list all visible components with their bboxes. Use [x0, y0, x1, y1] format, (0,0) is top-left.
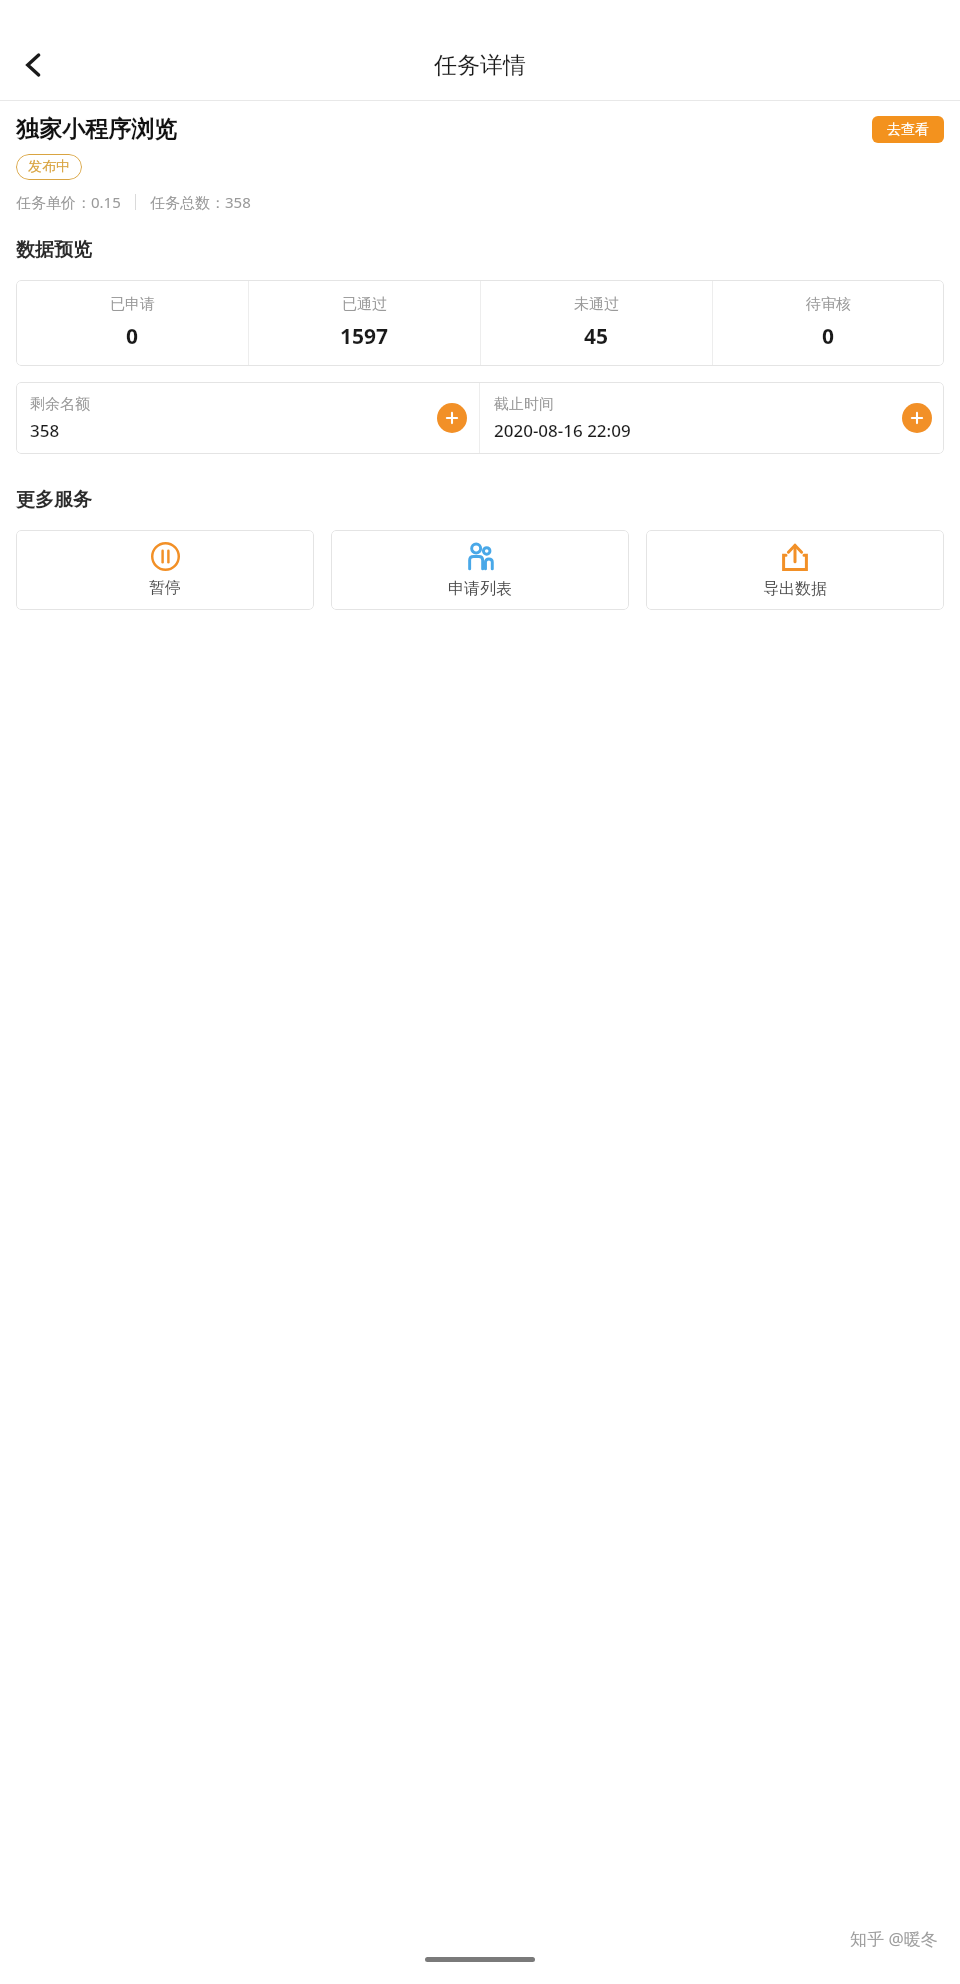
- staticText: 0: [822, 322, 835, 351]
- staticText: 去查看: [887, 121, 929, 139]
- button[interactable]: Back: [6, 37, 62, 93]
- button[interactable]: 未通过: [481, 280, 712, 366]
- button[interactable]: 已申请: [16, 280, 248, 366]
- button[interactable]: 导出数据: [646, 530, 944, 610]
- staticText: 45: [584, 322, 609, 351]
- staticText: 已通过: [342, 295, 387, 314]
- staticText: 1597: [340, 322, 389, 351]
- staticText: 2020-08-16 22:09: [494, 419, 631, 442]
- staticText: 任务总数：358: [150, 192, 251, 212]
- staticText: 任务详情: [434, 51, 526, 80]
- staticText: 知乎 @暖冬: [850, 1927, 938, 1950]
- staticText: 已申请: [110, 295, 155, 314]
- staticText: 截止时间: [494, 395, 554, 414]
- button[interactable]: 暂停: [16, 530, 314, 610]
- button[interactable]: Extend deadline: [902, 403, 932, 433]
- button[interactable]: 已通过: [249, 280, 480, 366]
- staticText: 任务单价：0.15: [16, 192, 121, 212]
- staticText: 暂停: [149, 578, 181, 598]
- staticText: 剩余名额: [30, 395, 90, 414]
- button[interactable]: 发布中: [16, 154, 82, 180]
- staticText: 更多服务: [16, 488, 92, 512]
- staticText: 0: [126, 322, 139, 351]
- button[interactable]: 去查看: [872, 116, 944, 143]
- staticText: 358: [30, 419, 60, 442]
- staticText: 数据预览: [16, 238, 92, 262]
- button[interactable]: 申请列表: [331, 530, 629, 610]
- staticText: 未通过: [574, 295, 619, 314]
- staticText: 导出数据: [763, 579, 827, 599]
- staticText: 申请列表: [448, 579, 512, 599]
- staticText: 待审核: [806, 295, 851, 314]
- button[interactable]: Add quota: [437, 403, 467, 433]
- staticText: 独家小程序浏览: [16, 115, 177, 144]
- button[interactable]: 待审核: [713, 280, 944, 366]
- staticText: 发布中: [28, 158, 70, 176]
